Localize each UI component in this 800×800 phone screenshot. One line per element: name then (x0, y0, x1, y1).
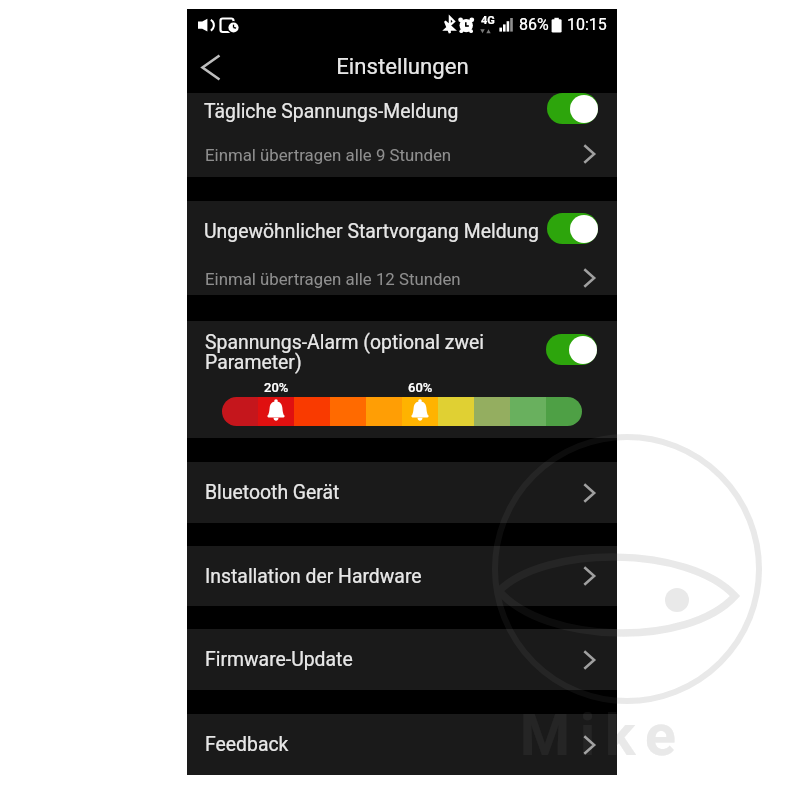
button[interactable]: Back (187, 43, 235, 91)
button[interactable]: Ungewöhnlicher Startvorgang Meldung (187, 201, 617, 261)
staticText: Einstellungen (336, 53, 469, 79)
staticText: Feedback (205, 733, 583, 756)
button[interactable]: Feedback (187, 714, 617, 775)
staticText: Tägliche Spannungs-Meldung (204, 100, 545, 123)
staticText: Bluetooth Gerät (205, 481, 583, 504)
button[interactable]: Installation der Hardware (187, 546, 617, 606)
button[interactable]: Spannungs-Alarm (optional zwei Parameter… (187, 321, 617, 383)
staticText: 20% (264, 380, 289, 395)
staticText: 60% (408, 380, 433, 395)
button[interactable]: Einmal übertragen alle 9 Stunden (187, 130, 617, 177)
button[interactable]: Firmware-Update (187, 629, 617, 690)
button[interactable]: Einmal übertragen alle 12 Stunden (187, 261, 617, 295)
staticText: Firmware-Update (205, 648, 583, 671)
staticText: Spannungs-Alarm (optional zwei Parameter… (205, 331, 534, 374)
staticText: 4G (481, 14, 495, 27)
staticText: Einmal übertragen alle 12 Stunden (205, 269, 583, 289)
staticText: Mike (520, 702, 686, 769)
staticText: Einmal übertragen alle 9 Stunden (205, 145, 583, 165)
button[interactable]: Bluetooth Gerät (187, 462, 617, 523)
button[interactable]: Toggle switch (546, 334, 597, 365)
staticText: Installation der Hardware (205, 565, 583, 588)
staticText: Mike (520, 702, 686, 769)
button[interactable]: Toggle switch (547, 213, 598, 244)
staticText: 10:15 (567, 15, 607, 34)
button[interactable]: Tägliche Spannungs-Meldung (187, 93, 617, 130)
staticText: Ungewöhnlicher Startvorgang Meldung (204, 220, 545, 243)
button[interactable]: Toggle switch (547, 93, 598, 124)
staticText: 86% (519, 15, 549, 34)
